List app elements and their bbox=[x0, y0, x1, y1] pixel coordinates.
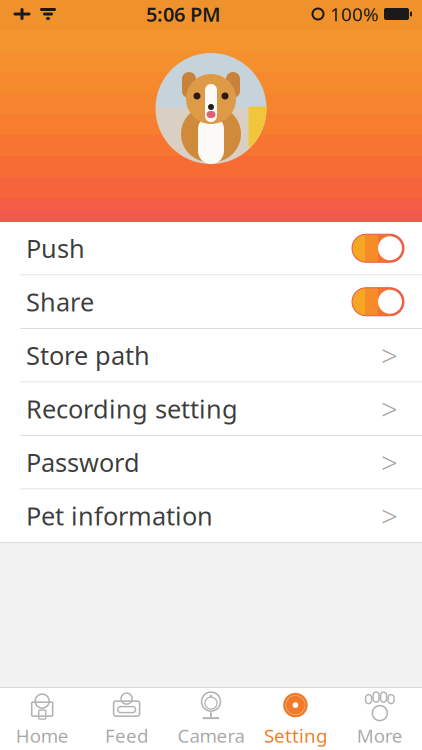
button[interactable]: Feed bbox=[84, 688, 169, 750]
button[interactable]: Camera bbox=[169, 688, 253, 750]
staticText: Recording setting bbox=[26, 392, 238, 425]
staticText: Camera bbox=[177, 723, 244, 748]
button[interactable]: Password bbox=[0, 436, 422, 488]
button[interactable]: More bbox=[338, 688, 422, 750]
button[interactable]: Recording setting bbox=[0, 382, 422, 435]
button[interactable]: Share bbox=[0, 275, 422, 328]
staticText: Share bbox=[26, 285, 94, 318]
staticText: More bbox=[357, 723, 403, 748]
button[interactable]: Home bbox=[0, 688, 84, 750]
staticText: Pet information bbox=[26, 499, 213, 532]
staticText: 5:06 PM bbox=[146, 1, 221, 27]
staticText: Home bbox=[16, 723, 69, 748]
button[interactable]: Setting bbox=[253, 688, 338, 750]
staticText: Store path bbox=[26, 338, 150, 372]
staticText: > bbox=[381, 336, 398, 375]
staticText: > bbox=[381, 443, 398, 482]
staticText: > bbox=[381, 496, 398, 535]
staticText: Password bbox=[26, 445, 140, 479]
staticText: Feed bbox=[105, 723, 148, 748]
staticText: 100% bbox=[330, 2, 379, 26]
staticText: > bbox=[381, 389, 398, 428]
button[interactable]: Push bbox=[0, 222, 422, 274]
staticText: Push bbox=[26, 231, 85, 265]
staticText: Setting bbox=[264, 723, 327, 748]
button[interactable]: Store path bbox=[0, 329, 422, 381]
button[interactable]: Pet information bbox=[0, 489, 422, 542]
